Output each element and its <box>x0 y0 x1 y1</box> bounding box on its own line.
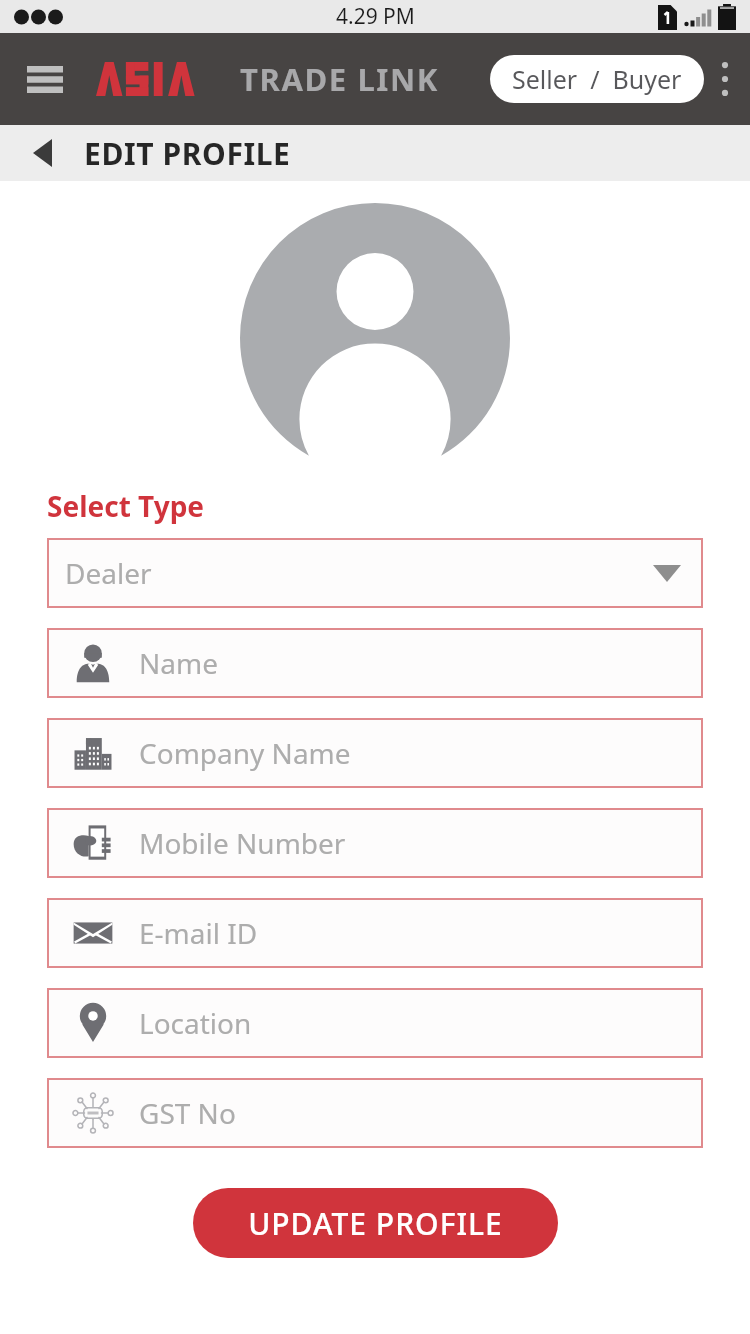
staticText: Mobile Number <box>139 824 346 862</box>
staticText: Name <box>139 644 218 682</box>
button[interactable]: UPDATE PROFILE <box>193 1188 558 1258</box>
button[interactable]: Mobile Number <box>47 808 703 878</box>
button[interactable]: More options <box>708 49 742 109</box>
staticText: 4.29 PM <box>336 2 415 31</box>
staticText: Select Type <box>47 487 205 525</box>
staticText: Location <box>139 1004 252 1042</box>
staticText: TRADE LINK <box>240 58 439 100</box>
staticText: E-mail ID <box>139 914 258 952</box>
button[interactable]: Name <box>47 628 703 698</box>
button[interactable]: E-mail ID <box>47 898 703 968</box>
button[interactable]: GST No <box>47 1078 703 1148</box>
button[interactable]: Location <box>47 988 703 1058</box>
button[interactable]: Profile photo <box>240 203 510 473</box>
button[interactable]: Menu <box>22 56 68 102</box>
staticText: GST No <box>139 1094 236 1132</box>
button[interactable]: Company Name <box>47 718 703 788</box>
button[interactable]: Seller / Buyer <box>490 55 704 103</box>
staticText: Dealer <box>65 554 653 592</box>
staticText: Company Name <box>139 734 351 772</box>
staticText: Seller / Buyer <box>512 62 682 96</box>
staticText: UPDATE PROFILE <box>248 1203 503 1244</box>
button[interactable]: Dealer <box>47 538 703 608</box>
staticText: EDIT PROFILE <box>84 133 291 174</box>
button[interactable]: Back <box>18 129 66 177</box>
